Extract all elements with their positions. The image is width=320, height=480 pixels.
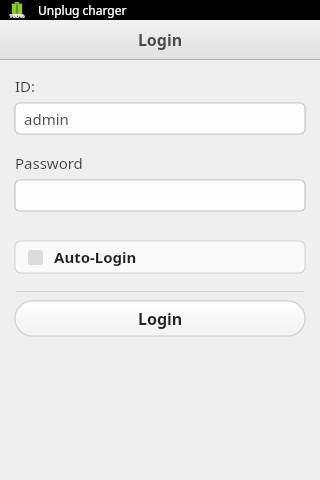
staticText: Login <box>0 29 320 51</box>
staticText: Auto-Login <box>54 247 137 267</box>
staticText: Password <box>15 153 83 173</box>
other: Battery full <box>10 2 24 18</box>
button[interactable]: admin <box>14 102 306 135</box>
staticText: admin <box>24 109 69 129</box>
button[interactable]: Auto-Login <box>14 240 306 274</box>
staticText: 100% <box>9 12 25 20</box>
staticText: Unplug charger <box>38 2 127 18</box>
button[interactable] <box>14 179 306 212</box>
staticText: ID: <box>15 76 36 96</box>
staticText: Login <box>138 308 183 330</box>
button[interactable]: Login <box>14 300 306 337</box>
